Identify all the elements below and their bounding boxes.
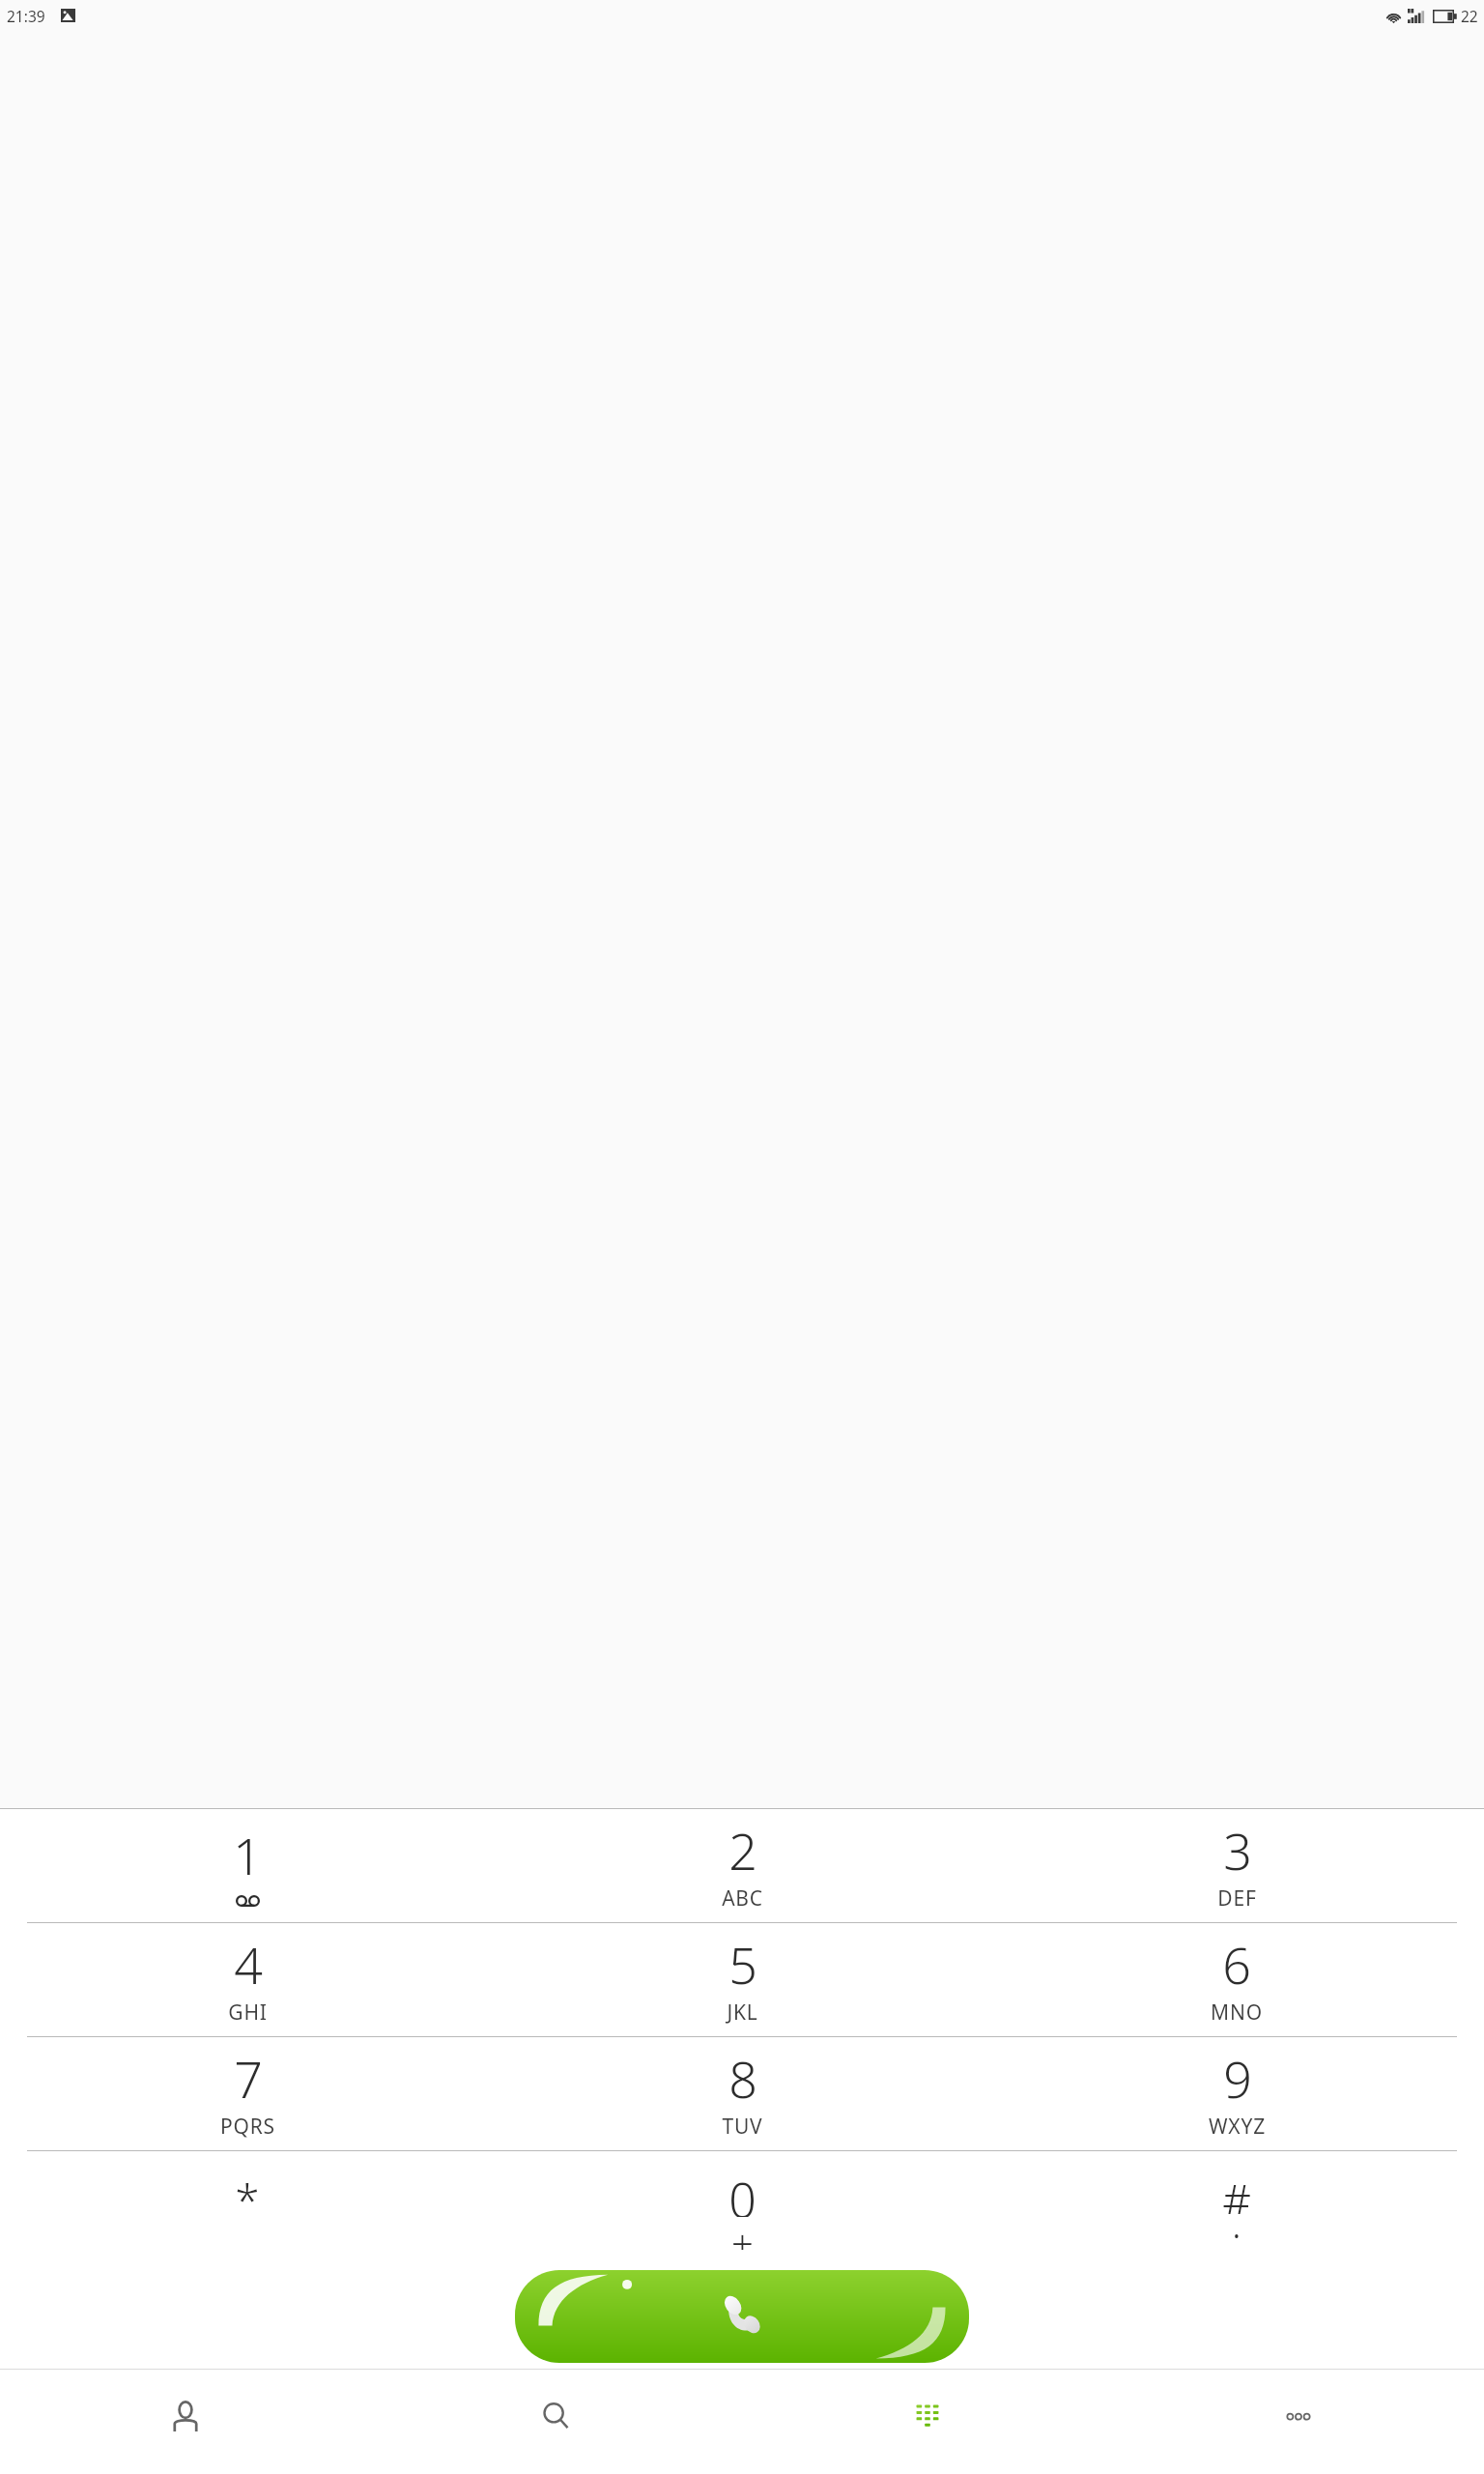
button[interactable]: 3 [989, 1809, 1484, 1922]
staticText: 21:39 [7, 6, 45, 26]
staticText: GHI [228, 1999, 268, 2027]
staticText: WXYZ [1209, 2113, 1266, 2141]
button[interactable]: 5 [495, 1923, 989, 2036]
button[interactable]: 2 [495, 1809, 989, 1922]
button[interactable]: # [989, 2151, 1484, 2264]
button[interactable]: Contacts [0, 2370, 371, 2474]
staticText: ; [1232, 2214, 1241, 2247]
staticText: 6 [1222, 1930, 1251, 1999]
staticText: 5 [728, 1930, 757, 1999]
staticText: 7 [234, 2044, 263, 2113]
staticText: 2 [728, 1816, 757, 1884]
button[interactable]: More options [1113, 2370, 1484, 2474]
staticText: TUV [722, 2113, 763, 2141]
button[interactable]: Call [515, 2270, 969, 2363]
button[interactable]: Search [371, 2370, 742, 2474]
staticText: 8 [728, 2044, 757, 2113]
staticText: ABC [722, 1884, 763, 1913]
button[interactable]: 1 [0, 1809, 495, 1922]
staticText: 4 [234, 1930, 263, 1999]
staticText: MNO [1211, 1999, 1263, 2027]
staticText: 1 [233, 1821, 262, 1889]
staticText: 3 [1223, 1816, 1252, 1884]
button[interactable]: 8 [495, 2037, 989, 2150]
button[interactable]: 9 [989, 2037, 1484, 2150]
staticText: PQRS [220, 2113, 275, 2141]
staticText: * [235, 2170, 260, 2214]
button[interactable]: Dialpad [742, 2370, 1113, 2474]
staticText: + [731, 2217, 754, 2250]
button[interactable]: 0 [495, 2151, 989, 2264]
staticText: 0 [728, 2167, 756, 2217]
staticText: # [1222, 2170, 1251, 2214]
staticText: 9 [1223, 2044, 1252, 2113]
button[interactable]: 7 [0, 2037, 495, 2150]
button[interactable]: * [0, 2151, 495, 2264]
staticText: JKL [727, 1999, 758, 2027]
staticText: 22 [1461, 6, 1478, 26]
button[interactable]: 4 [0, 1923, 495, 2036]
button[interactable]: 6 [989, 1923, 1484, 2036]
staticText: DEF [1217, 1884, 1257, 1913]
